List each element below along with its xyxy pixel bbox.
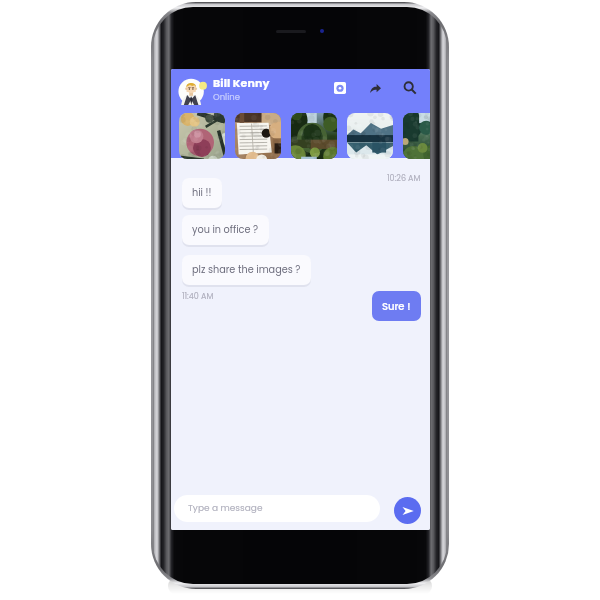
button[interactable]: Share (364, 77, 386, 99)
button[interactable]: Photo 5 (403, 113, 430, 159)
staticText: Online (213, 91, 241, 103)
button[interactable]: Photo 1 (179, 113, 225, 159)
staticText: you in office ? (192, 223, 259, 237)
button[interactable]: Photo 2 (235, 113, 281, 159)
staticText: Sure ! (382, 299, 411, 313)
button[interactable]: you in office ? (182, 215, 269, 245)
staticText: 10:26 AM (387, 173, 421, 184)
button[interactable]: Sure ! (372, 291, 421, 321)
button[interactable]: Type a message (174, 495, 380, 522)
button[interactable]: Send (394, 497, 421, 524)
button[interactable]: Photo 4 (347, 113, 393, 159)
staticText: plz share the images ? (192, 263, 301, 277)
button[interactable]: hii !! (182, 178, 222, 208)
button[interactable]: Camera (329, 77, 351, 99)
staticText: hii !! (192, 186, 212, 200)
button[interactable]: Photo 3 (291, 113, 337, 159)
button[interactable]: plz share the images ? (182, 255, 311, 285)
button[interactable]: Search (399, 77, 421, 99)
staticText: Bill Kenny (213, 75, 270, 90)
staticText: 11:40 AM (182, 291, 214, 302)
staticText: Type a message (188, 502, 263, 515)
